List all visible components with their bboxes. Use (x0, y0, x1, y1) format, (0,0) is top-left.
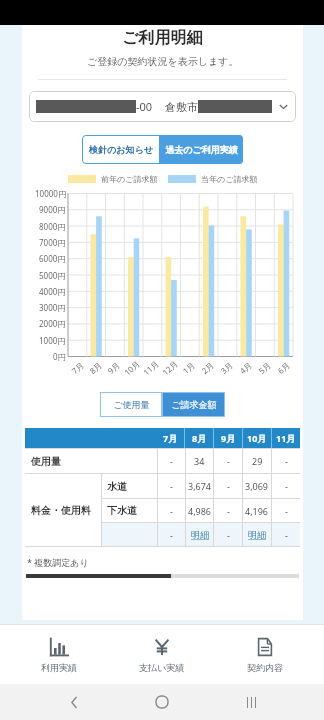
staticText: 明細 (248, 529, 266, 540)
staticText: 0円 (53, 351, 66, 362)
staticText: - (227, 505, 230, 517)
staticText: 7月 (163, 432, 178, 444)
button[interactable]: Back (59, 687, 89, 717)
staticText: ご登録の契約状況を表示します。 (87, 55, 239, 68)
button[interactable]: 過去のご利用実績 (160, 135, 243, 164)
staticText: 8000円 (39, 221, 66, 232)
button[interactable]: ご使用量 (100, 392, 162, 417)
staticText: * 複数調定あり (27, 556, 89, 568)
staticText: - (285, 529, 288, 541)
staticText: - (285, 505, 288, 517)
staticText: 倉敷市 (165, 100, 198, 114)
button[interactable]: 契約内容 (221, 625, 309, 684)
staticText: 3,674 (188, 480, 212, 492)
staticText: 7月 (69, 359, 86, 376)
staticText: 1月 (180, 359, 197, 376)
staticText: ご利用明細 (122, 28, 203, 48)
staticText: 3000円 (39, 302, 66, 313)
button[interactable]: 支払い実績 (118, 625, 206, 684)
staticText: 水道 (107, 480, 127, 493)
staticText: 検針のお知らせ (89, 144, 153, 155)
button[interactable]: - (272, 523, 300, 546)
button[interactable]: 明細 (243, 523, 271, 546)
button[interactable]: 利用実績 (15, 625, 103, 684)
staticText: 4月 (237, 359, 254, 376)
staticText: 3,069 (245, 480, 269, 492)
button[interactable]: ご請求金額 (162, 392, 225, 417)
staticText: 29 (252, 455, 263, 467)
staticText: 2000円 (39, 318, 66, 329)
staticText: - (227, 529, 230, 541)
staticText: 9000円 (39, 204, 66, 215)
staticText: 11月 (141, 357, 161, 378)
staticText: 明細 (191, 529, 209, 540)
staticText: 3月 (218, 359, 235, 376)
staticText: ご使用量 (113, 399, 150, 410)
staticText: 8月 (87, 359, 104, 376)
staticText: 11月 (276, 432, 296, 444)
staticText: 前年のご請求額 (101, 174, 158, 184)
staticText: 12月 (160, 357, 180, 378)
button[interactable]: Home (147, 687, 177, 717)
staticText: - (227, 480, 230, 492)
button[interactable]: 明細 (186, 523, 213, 546)
staticText: 利用実績 (41, 662, 77, 673)
staticText: 10月 (247, 432, 267, 444)
staticText: 9月 (221, 432, 236, 444)
button[interactable]: Recents (236, 687, 266, 717)
button[interactable]: - (158, 523, 185, 546)
staticText: 料金・使用料 (31, 504, 91, 517)
staticText: 6000円 (39, 253, 66, 264)
staticText: 4,986 (188, 505, 212, 517)
staticText: - (285, 455, 288, 467)
staticText: - (227, 455, 230, 467)
staticText: - (170, 480, 173, 492)
staticText: 2月 (199, 359, 216, 376)
button[interactable]: 検針のお知らせ (82, 135, 160, 164)
staticText: 4,196 (245, 505, 269, 517)
staticText: 34 (194, 455, 205, 467)
button[interactable]: -00 (29, 91, 296, 122)
staticText: 8月 (192, 432, 207, 444)
staticText: 4000円 (39, 286, 66, 297)
staticText: 契約内容 (247, 662, 283, 673)
staticText: 6月 (275, 359, 292, 376)
staticText: - (170, 455, 173, 467)
staticText: 当年のご請求額 (201, 174, 258, 184)
staticText: 1000円 (39, 335, 66, 346)
staticText: 7000円 (39, 237, 66, 248)
staticText: 使用量 (31, 455, 61, 468)
staticText: - (285, 480, 288, 492)
staticText: 9月 (105, 359, 122, 376)
staticText: -00 (136, 99, 153, 114)
staticText: 下水道 (107, 504, 137, 517)
staticText: 過去のご利用実績 (165, 144, 238, 155)
staticText: 5月 (256, 359, 273, 376)
staticText: 10月 (122, 357, 142, 378)
staticText: ご請求金額 (171, 399, 217, 410)
staticText: 10000円 (35, 188, 66, 199)
button[interactable]: - (214, 523, 242, 546)
staticText: - (170, 529, 173, 541)
staticText: 5000円 (39, 270, 66, 281)
staticText: 支払い実績 (139, 662, 185, 673)
staticText: - (170, 505, 173, 517)
